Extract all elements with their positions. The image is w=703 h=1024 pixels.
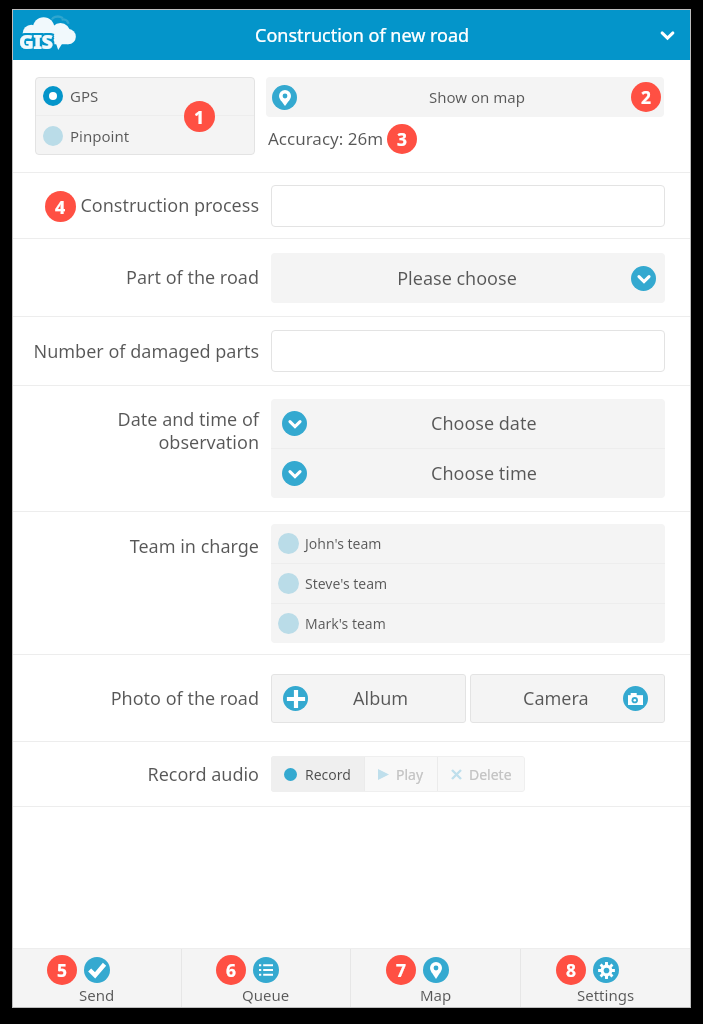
staticText: Play [396,765,424,784]
staticText: 4 [55,195,66,219]
button[interactable]: Expand menu [644,10,690,60]
staticText: Photo of the road [31,686,259,711]
staticText: 2 [641,85,651,109]
button[interactable]: Choose date [271,399,665,448]
staticText: Accuracy: 26m [268,127,384,150]
staticText: Date and time of observation [31,407,259,454]
button[interactable]: John's team [271,524,665,563]
staticText: Queue [242,985,290,1005]
staticText: Construction of new road [255,23,470,48]
button[interactable]: Choose time [271,449,665,498]
staticText: 3 [397,127,407,151]
button[interactable]: 7 [351,949,520,1007]
button[interactable]: Camera [470,674,665,723]
button[interactable]: 6 [182,949,350,1007]
staticText: Team in charge [129,534,259,559]
staticText: GIS [17,26,51,53]
staticText: 7 [396,958,406,982]
staticText: Choose date [431,411,537,436]
staticText: Choose time [431,461,537,486]
staticText: 5 [57,958,67,982]
button[interactable]: 5 [13,949,181,1007]
staticText: Number of damaged parts [31,339,259,364]
button[interactable] [271,330,665,372]
staticText: GIS [17,30,51,57]
staticText: GIS [21,28,55,55]
staticText: Map [420,985,452,1005]
staticText: GIS [19,26,53,53]
staticText: GIS [17,28,51,55]
staticText: Delete [469,765,512,784]
staticText: Record [305,765,351,784]
staticText: GIS [19,30,53,57]
button[interactable]: Delete [438,756,525,792]
staticText: John's team [305,534,382,553]
button[interactable]: Play [365,756,437,792]
button[interactable]: Record [271,756,364,792]
button[interactable] [271,185,665,227]
button[interactable]: Steve's team [271,564,665,603]
staticText: Pinpoint [70,126,130,146]
staticText: 8 [566,958,576,982]
staticText: GIS [21,26,55,53]
staticText: Record audio [31,762,259,787]
staticText: 6 [226,958,236,982]
button[interactable]: Show on map [266,77,664,117]
button[interactable]: Please choose [271,253,665,303]
staticText: Mark's team [305,614,386,633]
button[interactable]: Pinpoint [35,116,255,155]
staticText: Construction process [31,193,259,218]
staticText: Settings [577,985,635,1005]
staticText: Steve's team [305,574,388,593]
staticText: 1 [194,105,205,129]
staticText: Album [353,686,409,711]
staticText: GIS [19,28,53,55]
staticText: GIS [21,30,55,57]
button[interactable]: Mark's team [271,604,665,643]
staticText: Part of the road [31,265,259,290]
staticText: GPS [70,86,99,106]
staticText: Please choose [283,266,631,291]
button[interactable]: GPS [35,77,255,115]
staticText: Show on map [429,87,525,107]
button[interactable]: Album [271,674,466,723]
button[interactable]: 8 [521,949,690,1007]
staticText: Send [79,985,115,1005]
staticText: Camera [523,686,589,711]
